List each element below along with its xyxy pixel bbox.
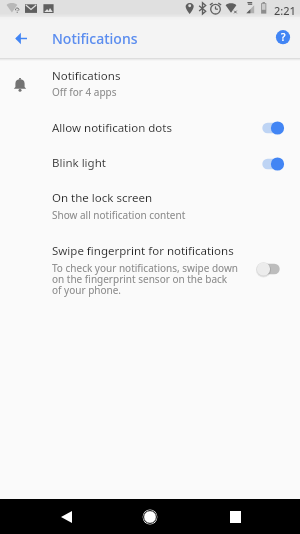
staticText: Off for 4 apps xyxy=(52,85,117,99)
staticText: Notifications xyxy=(52,29,138,48)
staticText: ? xyxy=(281,30,286,44)
staticText: Allow notification dots xyxy=(52,120,172,136)
button[interactable]: Back xyxy=(6,23,36,53)
staticText: Blink light xyxy=(52,155,106,171)
button[interactable]: Allow notification dots xyxy=(0,105,300,139)
staticText: Show all notification content xyxy=(52,208,186,222)
button[interactable]: Help xyxy=(269,24,297,52)
staticText: 2:21 xyxy=(274,3,296,18)
button[interactable]: Notifications xyxy=(0,59,300,105)
button[interactable]: Switch off xyxy=(256,259,284,279)
button[interactable]: Blink light xyxy=(0,139,300,174)
button[interactable]: Recents xyxy=(216,499,254,534)
button[interactable]: Back xyxy=(47,499,85,534)
button[interactable]: Switch on xyxy=(256,154,284,174)
staticText: To check your notifications, swipe down … xyxy=(52,261,238,297)
button[interactable]: Home xyxy=(131,499,169,534)
button[interactable]: Swipe fingerprint for notifications xyxy=(0,217,300,273)
staticText: On the lock screen xyxy=(52,190,153,206)
staticText: Notifications xyxy=(52,68,121,84)
button[interactable]: Switch on xyxy=(256,118,284,138)
staticText: Swipe fingerprint for notifications xyxy=(52,243,234,259)
button[interactable]: On the lock screen xyxy=(0,174,300,217)
